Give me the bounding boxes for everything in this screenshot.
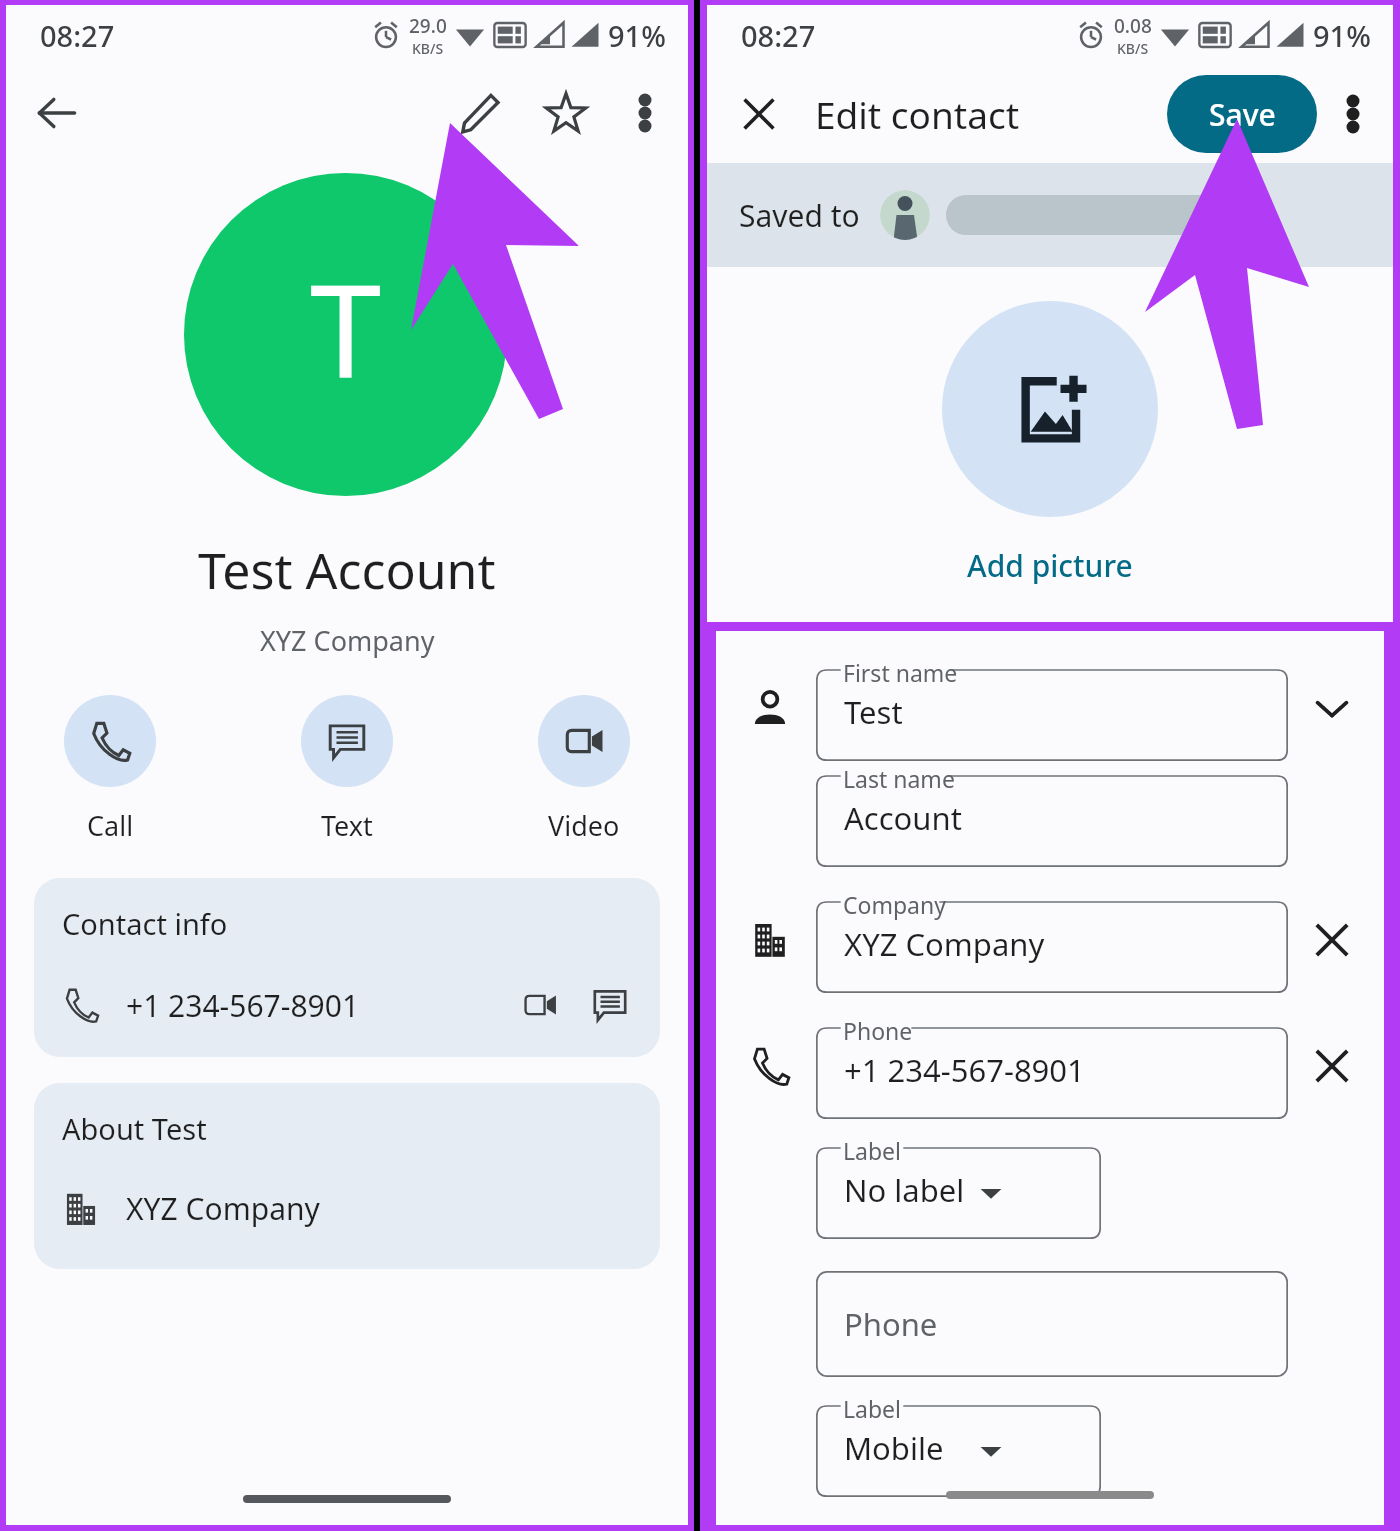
staticText: T <box>310 240 382 414</box>
staticText: XYZ Company <box>126 1188 320 1229</box>
staticText: Save <box>1209 94 1276 135</box>
button[interactable]: Video <box>532 695 636 844</box>
staticText: 08:27 <box>40 16 115 55</box>
staticText: Saved to <box>739 195 860 236</box>
button[interactable]: Close <box>731 86 787 142</box>
button[interactable]: More options <box>616 84 674 142</box>
staticText: Call <box>87 807 134 844</box>
staticText: Contact info <box>62 904 228 943</box>
button[interactable]: Video call <box>516 981 564 1029</box>
button[interactable]: Phone <box>816 1271 1288 1377</box>
button[interactable]: T <box>184 173 507 496</box>
staticText: Phone <box>843 1015 913 1046</box>
button[interactable]: Company <box>816 887 1288 993</box>
staticText: Add picture <box>967 545 1133 586</box>
button[interactable]: Call <box>58 695 162 844</box>
staticText: Company <box>843 889 946 920</box>
button[interactable]: Save <box>1167 75 1317 153</box>
staticText: +1 234-567-8901 <box>126 985 360 1026</box>
button[interactable]: Clear company <box>1302 910 1362 970</box>
staticText: Label <box>843 1393 902 1424</box>
staticText: Video <box>548 807 620 844</box>
staticText: 08:27 <box>741 16 816 55</box>
button[interactable]: About Test <box>34 1083 660 1269</box>
staticText: About Test <box>62 1109 207 1148</box>
staticText: 91% <box>608 16 666 55</box>
staticText: Last name <box>843 763 955 794</box>
staticText: Test <box>844 691 903 733</box>
staticText: No label <box>844 1169 965 1211</box>
staticText: 91% <box>1313 16 1371 55</box>
staticText: First name <box>843 657 958 688</box>
button[interactable]: Add to favorites <box>534 81 598 145</box>
staticText: Mobile <box>844 1427 944 1469</box>
staticText: XYZ Company <box>844 923 1045 965</box>
button[interactable]: Label <box>816 1133 1101 1239</box>
button[interactable]: Add picture <box>957 541 1143 590</box>
button[interactable]: Clear phone <box>1302 1036 1362 1096</box>
button[interactable]: More options <box>1325 86 1381 142</box>
staticText: Text <box>321 807 373 844</box>
staticText: KB/S <box>412 39 444 58</box>
staticText: XYZ Company <box>260 622 435 659</box>
staticText: KB/S <box>1117 39 1149 58</box>
staticText: +1 234-567-8901 <box>844 1049 1085 1091</box>
button[interactable]: Expand name fields <box>1302 678 1362 738</box>
button[interactable]: Back <box>28 84 86 142</box>
button[interactable]: Add picture <box>942 301 1158 517</box>
staticText: Account <box>844 797 962 839</box>
button[interactable]: Phone <box>816 1013 1288 1119</box>
button[interactable]: Saved to <box>707 163 1393 267</box>
staticText: Phone <box>844 1303 938 1345</box>
staticText: Test Account <box>198 536 496 604</box>
button[interactable]: Edit <box>448 81 512 145</box>
staticText: 0.08 <box>1114 13 1152 39</box>
button[interactable]: Send message <box>586 981 634 1029</box>
button[interactable]: Contact info <box>34 878 660 1057</box>
staticText: Edit contact <box>815 89 1020 139</box>
button[interactable]: Text <box>295 695 399 844</box>
staticText: 29.0 <box>409 13 447 39</box>
button[interactable]: First name <box>816 655 1288 761</box>
button[interactable]: Label <box>816 1391 1101 1497</box>
staticText: Label <box>843 1135 902 1166</box>
button[interactable]: Last name <box>816 761 1288 867</box>
